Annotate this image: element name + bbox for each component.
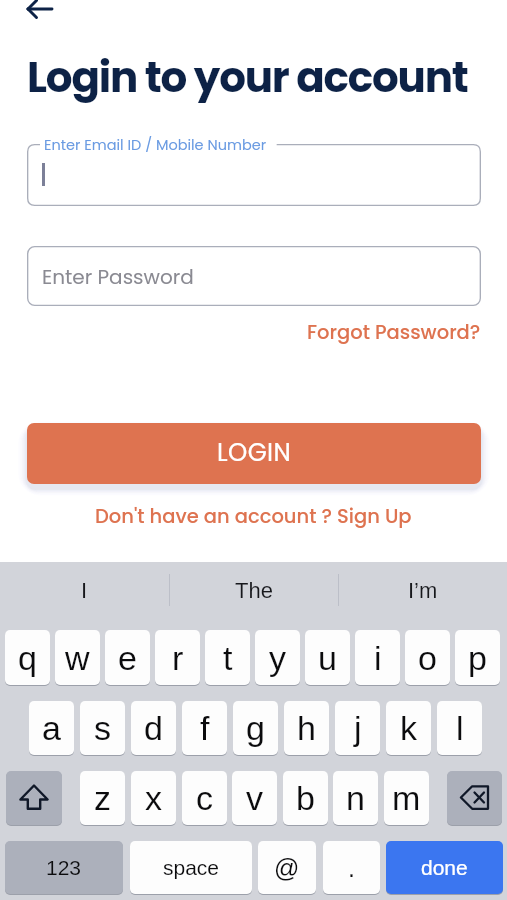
button[interactable]: z bbox=[80, 771, 125, 825]
button[interactable]: s bbox=[80, 701, 125, 755]
staticText: I’m bbox=[408, 578, 438, 603]
staticText: k bbox=[400, 709, 417, 747]
staticText: s bbox=[94, 709, 111, 747]
staticText: Don't have an account ? Sign Up bbox=[95, 503, 412, 530]
staticText: The bbox=[235, 578, 273, 603]
button[interactable]: u bbox=[305, 630, 350, 685]
staticText: t bbox=[223, 639, 233, 677]
button[interactable]: i bbox=[355, 630, 400, 685]
staticText: v bbox=[246, 779, 263, 817]
staticText: Forgot Password? bbox=[307, 319, 481, 346]
staticText: b bbox=[296, 779, 315, 817]
button[interactable]: m bbox=[384, 771, 429, 825]
staticText: e bbox=[118, 639, 137, 677]
button[interactable]: y bbox=[255, 630, 300, 685]
button[interactable]: Forgot Password? bbox=[303, 315, 485, 350]
staticText: n bbox=[346, 779, 365, 817]
staticText: l bbox=[456, 709, 464, 747]
staticText: c bbox=[196, 779, 213, 817]
staticText: q bbox=[18, 639, 37, 677]
staticText: f bbox=[200, 709, 210, 747]
button[interactable]: I bbox=[0, 578, 169, 603]
button[interactable]: I’m bbox=[339, 578, 507, 603]
button[interactable]: w bbox=[55, 630, 100, 685]
button[interactable]: Shift bbox=[6, 771, 62, 825]
staticText: u bbox=[318, 639, 337, 677]
button[interactable]: t bbox=[205, 630, 250, 685]
button[interactable]: x bbox=[131, 771, 176, 825]
staticText: done bbox=[421, 856, 468, 879]
button[interactable]: . bbox=[323, 841, 380, 894]
button[interactable]: l bbox=[437, 701, 482, 755]
button[interactable]: Don't have an account ? Sign Up bbox=[91, 499, 416, 534]
button[interactable]: h bbox=[284, 701, 329, 755]
button[interactable]: e bbox=[105, 630, 150, 685]
button[interactable]: j bbox=[335, 701, 380, 755]
staticText: . bbox=[348, 854, 355, 882]
button[interactable]: k bbox=[386, 701, 431, 755]
button[interactable]: done bbox=[386, 841, 503, 894]
staticText: Enter Email ID / Mobile Number bbox=[44, 135, 267, 155]
button[interactable]: f bbox=[182, 701, 227, 755]
staticText: w bbox=[65, 639, 90, 677]
staticText: x bbox=[145, 779, 162, 817]
button[interactable]: n bbox=[333, 771, 378, 825]
button[interactable]: The bbox=[170, 578, 338, 603]
staticText: LOGIN bbox=[217, 435, 292, 469]
button[interactable]: b bbox=[283, 771, 328, 825]
staticText: @ bbox=[274, 854, 300, 882]
button[interactable]: q bbox=[5, 630, 50, 685]
staticText: h bbox=[297, 709, 316, 747]
button[interactable]: p bbox=[455, 630, 500, 685]
button[interactable]: 123 bbox=[5, 841, 123, 894]
button[interactable]: LOGIN bbox=[27, 423, 481, 484]
button[interactable]: g bbox=[233, 701, 278, 755]
staticText: y bbox=[269, 639, 286, 677]
button[interactable]: c bbox=[182, 771, 227, 825]
staticText: a bbox=[42, 709, 61, 747]
staticText: g bbox=[246, 709, 265, 747]
staticText: z bbox=[94, 779, 111, 817]
button[interactable]: v bbox=[232, 771, 277, 825]
staticText: m bbox=[392, 779, 421, 817]
staticText: I bbox=[81, 578, 88, 603]
button[interactable]: @ bbox=[258, 841, 316, 894]
staticText: i bbox=[374, 639, 382, 677]
button[interactable]: a bbox=[29, 701, 74, 755]
button[interactable]: o bbox=[405, 630, 450, 685]
staticText: r bbox=[172, 639, 184, 677]
button[interactable]: space bbox=[130, 841, 252, 894]
button[interactable]: Backspace bbox=[447, 771, 502, 825]
button[interactable]: Back bbox=[6, 0, 50, 30]
staticText: j bbox=[354, 709, 362, 747]
button[interactable]: r bbox=[155, 630, 200, 685]
staticText: o bbox=[418, 639, 437, 677]
staticText: d bbox=[144, 709, 163, 747]
staticText: Login to your account bbox=[27, 48, 468, 107]
staticText: Enter Password bbox=[42, 263, 194, 291]
staticText: p bbox=[468, 639, 487, 677]
staticText: 123 bbox=[46, 856, 82, 879]
staticText: space bbox=[163, 856, 220, 879]
button[interactable]: d bbox=[131, 701, 176, 755]
